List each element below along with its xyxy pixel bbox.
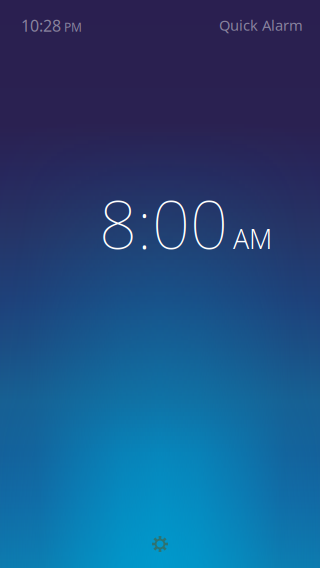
staticText: Quick Alarm — [219, 15, 303, 35]
button[interactable]: Settings — [138, 522, 182, 566]
button[interactable]: Quick Alarm — [219, 15, 303, 35]
staticText: 8:00 — [99, 179, 228, 267]
staticText: AM — [233, 221, 272, 256]
staticText: 10:28 — [21, 15, 61, 36]
staticText: PM — [61, 19, 82, 35]
